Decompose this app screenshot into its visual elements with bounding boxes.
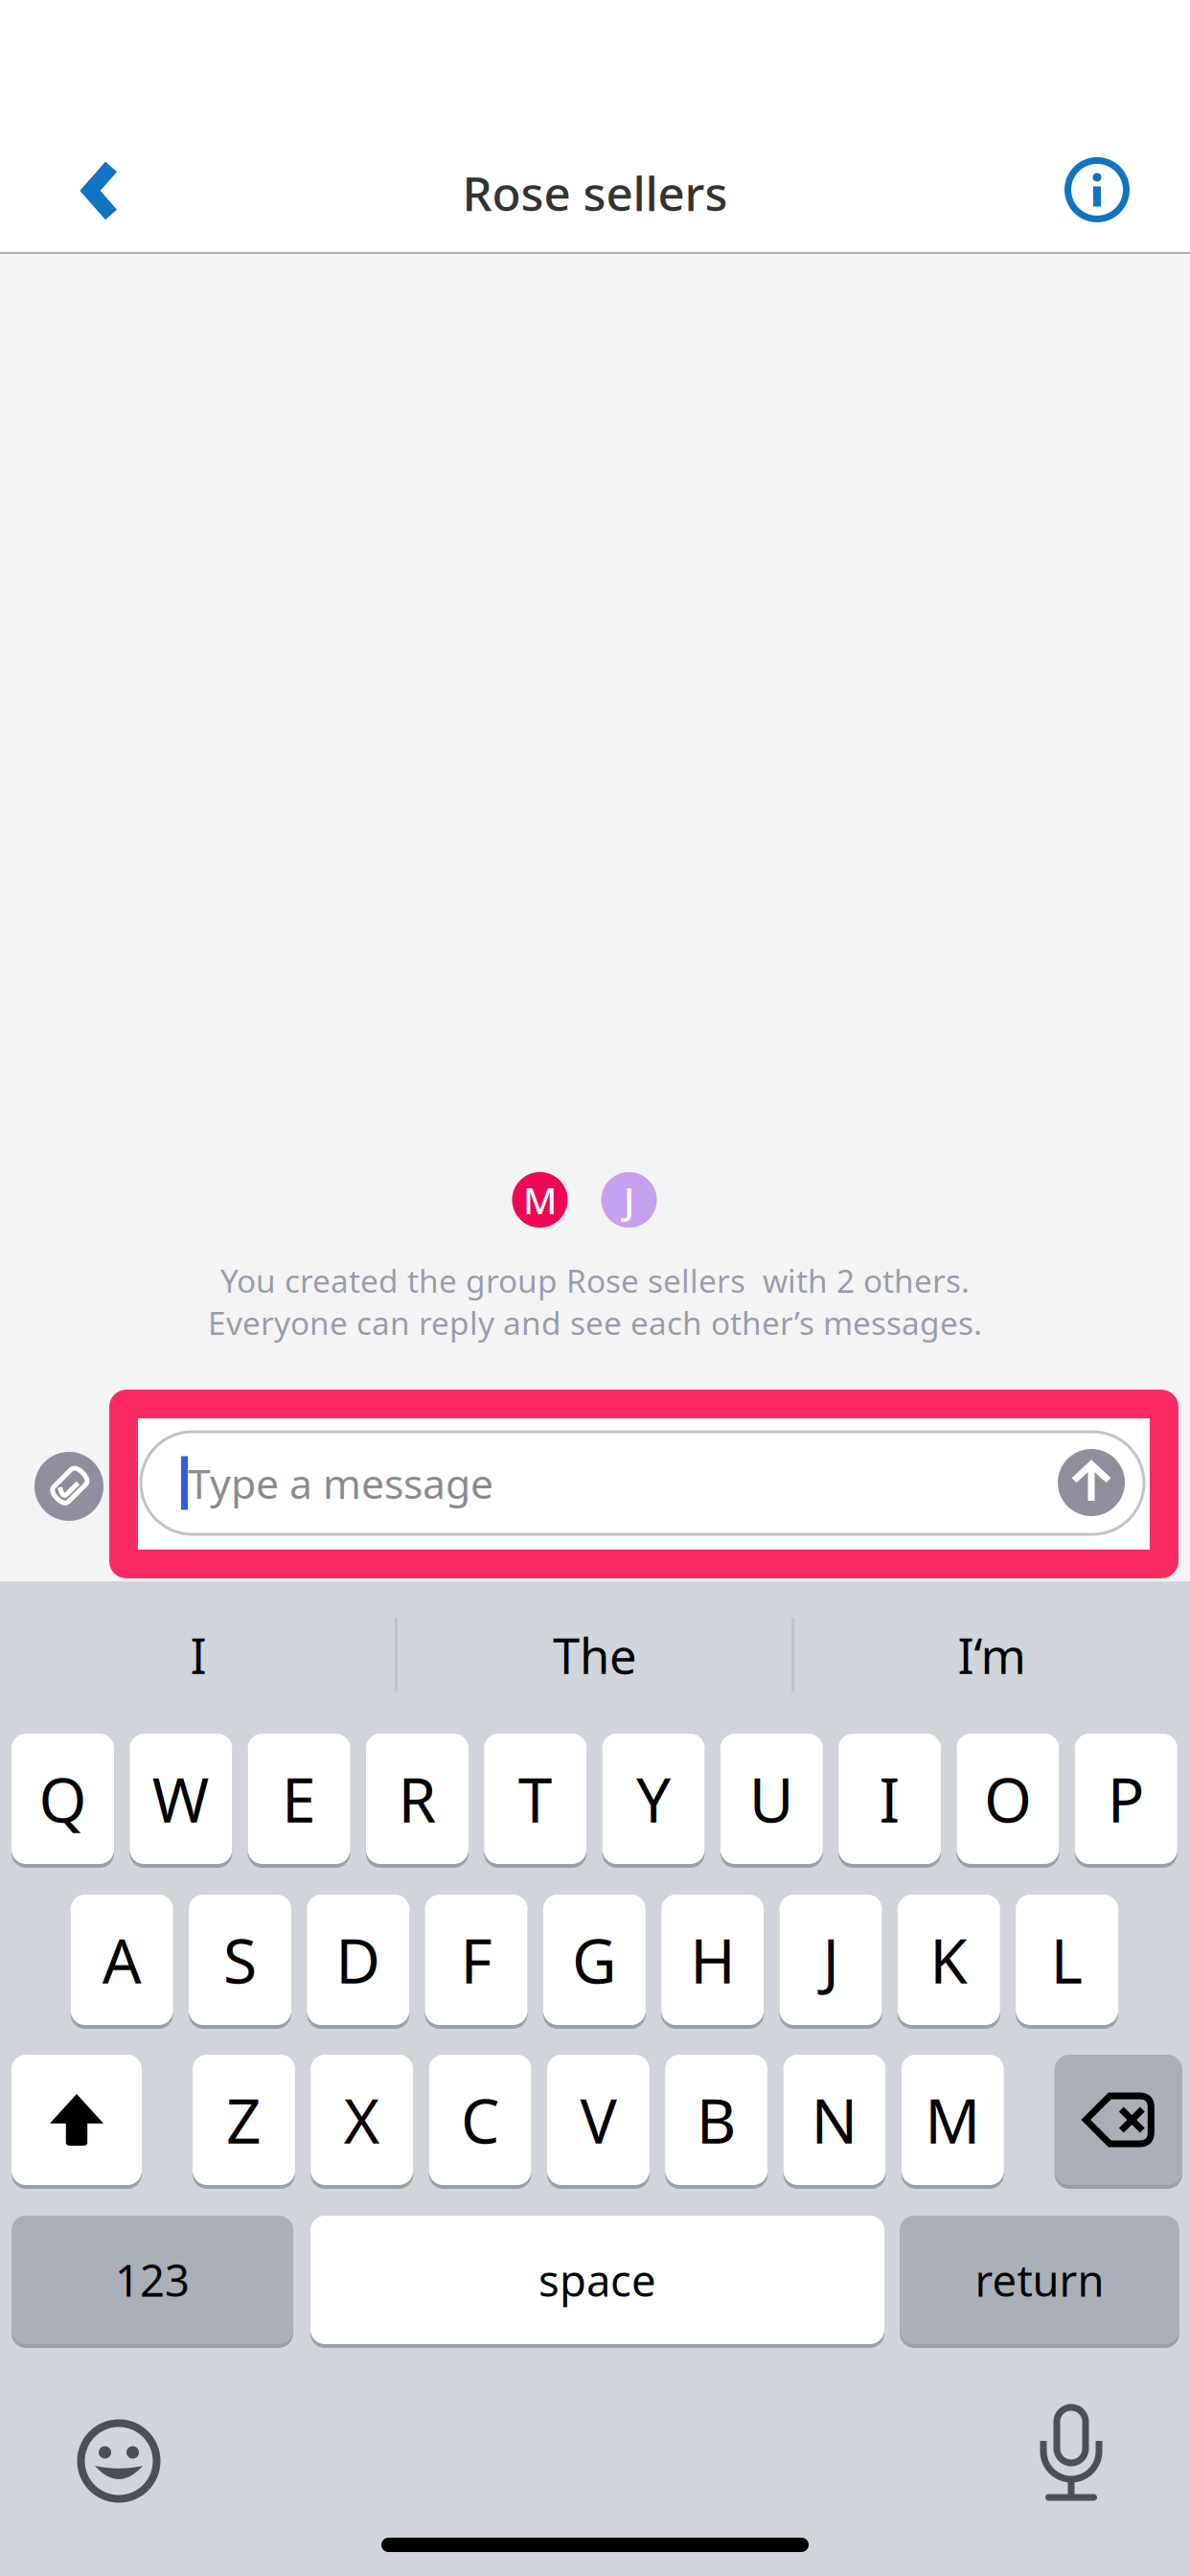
button[interactable]: Back: [48, 138, 153, 243]
button[interactable]: M: [901, 2055, 1004, 2185]
staticText: return: [975, 2251, 1104, 2309]
button[interactable]: S: [189, 1895, 291, 2025]
staticText: J: [823, 1919, 839, 2001]
button[interactable]: K: [898, 1895, 1000, 2025]
staticText: I‘m: [958, 1623, 1026, 1687]
staticText: X: [344, 2079, 380, 2161]
button[interactable]: F: [425, 1895, 528, 2025]
button[interactable]: C: [429, 2055, 531, 2185]
button[interactable]: P: [1075, 1734, 1177, 1864]
staticText: P: [1107, 1758, 1145, 1840]
button[interactable]: D: [307, 1895, 409, 2025]
button[interactable]: I‘m: [793, 1583, 1190, 1727]
button[interactable]: W: [130, 1734, 232, 1864]
staticText: O: [984, 1758, 1032, 1840]
staticText: I: [879, 1758, 900, 1840]
button[interactable]: U: [720, 1734, 823, 1864]
staticText: The: [553, 1623, 637, 1687]
staticText: N: [811, 2079, 858, 2161]
staticText: You created the group Rose sellers with …: [220, 1259, 970, 1302]
button[interactable]: Q: [11, 1734, 114, 1864]
staticText: Y: [636, 1758, 671, 1840]
staticText: I: [190, 1623, 206, 1687]
staticText: Rose sellers: [462, 161, 728, 224]
staticText: Everyone can reply and see each other’s …: [208, 1301, 982, 1344]
button[interactable]: A: [71, 1895, 173, 2025]
button[interactable]: N: [783, 2055, 886, 2185]
staticText: T: [518, 1758, 553, 1840]
staticText: Z: [226, 2079, 262, 2161]
button[interactable]: O: [957, 1734, 1059, 1864]
button[interactable]: I: [838, 1734, 941, 1864]
staticText: L: [1051, 1919, 1083, 2001]
staticText: G: [572, 1919, 617, 2001]
button[interactable]: Attach file: [34, 1452, 103, 1521]
staticText: W: [152, 1758, 210, 1840]
button[interactable]: L: [1016, 1895, 1118, 2025]
button[interactable]: G: [543, 1895, 646, 2025]
staticText: S: [223, 1919, 257, 2001]
button[interactable]: Type a message: [141, 1432, 1144, 1534]
button[interactable]: Z: [193, 2055, 295, 2185]
staticText: R: [398, 1758, 436, 1840]
staticText: A: [102, 1919, 142, 2001]
staticText: M: [523, 1175, 557, 1224]
button[interactable]: The: [397, 1583, 793, 1727]
staticText: space: [538, 2251, 656, 2309]
button[interactable]: Group info: [1044, 137, 1150, 242]
button[interactable]: return: [900, 2216, 1179, 2344]
staticText: H: [690, 1919, 735, 2001]
button[interactable]: Dictate: [1018, 2403, 1124, 2509]
staticText: 123: [115, 2251, 190, 2309]
button[interactable]: I: [0, 1583, 397, 1727]
staticText: Q: [39, 1758, 87, 1840]
button[interactable]: Y: [602, 1734, 705, 1864]
button[interactable]: H: [661, 1895, 764, 2025]
staticText: J: [624, 1175, 634, 1224]
button[interactable]: Send: [1058, 1449, 1125, 1516]
staticText: M: [925, 2079, 980, 2161]
button[interactable]: R: [366, 1734, 468, 1864]
staticText: D: [336, 1919, 381, 2001]
button[interactable]: J: [779, 1895, 882, 2025]
staticText: B: [696, 2079, 737, 2161]
staticText: V: [580, 2079, 616, 2161]
staticText: U: [749, 1758, 794, 1840]
staticText: C: [461, 2079, 499, 2161]
staticText: Type a message: [188, 1456, 493, 1510]
staticText: K: [930, 1919, 968, 2001]
staticText: F: [460, 1919, 492, 2001]
button[interactable]: space: [310, 2216, 884, 2344]
button[interactable]: B: [665, 2055, 768, 2185]
button[interactable]: [11, 2055, 142, 2185]
staticText: E: [282, 1758, 316, 1840]
button[interactable]: E: [248, 1734, 350, 1864]
button[interactable]: [1055, 2055, 1182, 2185]
button[interactable]: T: [484, 1734, 587, 1864]
button[interactable]: 123: [11, 2216, 293, 2344]
button[interactable]: V: [547, 2055, 650, 2185]
button[interactable]: Emoji: [66, 2408, 172, 2514]
button[interactable]: X: [311, 2055, 413, 2185]
